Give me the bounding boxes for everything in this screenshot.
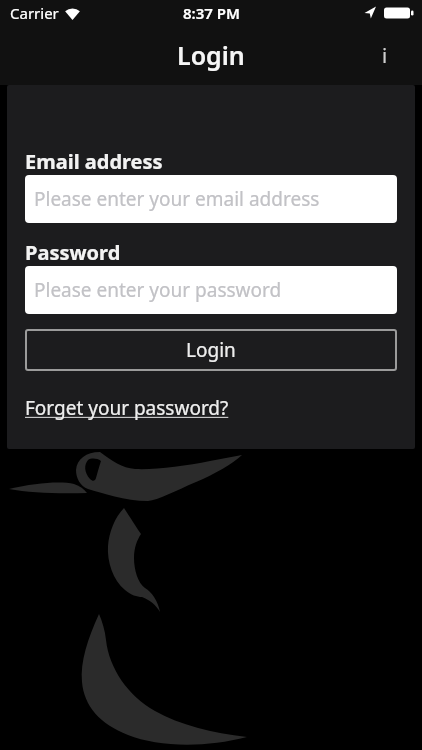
button[interactable]: i xyxy=(370,40,400,70)
button[interactable]: Forget your password? xyxy=(25,395,229,421)
staticText: 8:37 PM xyxy=(183,3,240,23)
button[interactable]: Login xyxy=(25,329,397,371)
staticText: Password xyxy=(25,239,121,266)
staticText: Email address xyxy=(25,148,163,175)
staticText: Login xyxy=(186,337,236,363)
staticText: Please enter your email address xyxy=(34,186,320,212)
button[interactable]: Please enter your email address xyxy=(25,175,397,223)
staticText: Please enter your password xyxy=(34,277,282,303)
button[interactable]: Please enter your password xyxy=(25,266,397,314)
staticText: Carrier xyxy=(10,3,59,23)
staticText: Login xyxy=(177,38,245,72)
staticText: i xyxy=(382,42,388,69)
